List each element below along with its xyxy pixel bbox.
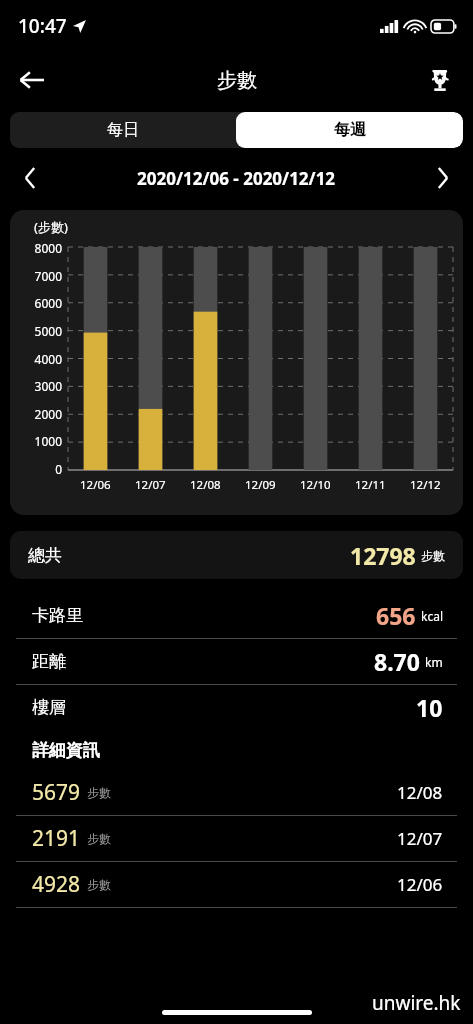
staticText: 5000 [34,323,62,339]
staticText: 8.70 [374,646,420,677]
button[interactable]: 樓層 [0,685,473,730]
button[interactable]: Achievements [417,57,463,103]
staticText: 2020/12/06 - 2020/12/12 [137,167,336,190]
staticText: 步數 [421,548,445,563]
staticText: 12/09 [245,477,276,493]
staticText: unwire.hk [372,990,461,1016]
button[interactable]: 2191 [0,816,473,861]
staticText: 4000 [34,351,62,367]
button[interactable]: 4928 [0,862,473,907]
staticText: 12/06 [80,477,111,493]
button[interactable]: 每日 [10,112,236,148]
staticText: 12/11 [355,477,386,493]
staticText: 10:47 [18,13,67,39]
staticText: (步數) [34,218,68,236]
staticText: 656 [376,600,416,631]
staticText: 步數 [87,877,111,892]
staticText: 2191 [32,824,81,853]
button[interactable]: Previous week [8,158,52,198]
staticText: 5679 [32,778,81,807]
staticText: kcal [421,608,443,624]
button[interactable]: 每週 [236,112,463,148]
staticText: 樓層 [32,697,66,718]
staticText: 2000 [34,406,62,422]
button[interactable]: 距離 [0,639,473,684]
staticText: 8000 [34,240,62,256]
staticText: 3000 [34,378,62,394]
staticText: 12798 [350,540,416,571]
staticText: 步數 [87,831,111,846]
staticText: 12/07 [135,477,166,493]
staticText: 步數 [87,785,111,800]
staticText: 詳細資訊 [32,740,100,761]
staticText: 6000 [34,295,62,311]
button[interactable]: Next week [421,158,465,198]
button[interactable]: Back [8,56,56,104]
button[interactable]: 5679 [0,770,473,815]
staticText: 4928 [32,870,81,899]
staticText: 0 [55,461,62,477]
staticText: 12/06 [397,873,443,896]
button[interactable]: 卡路里 [0,593,473,638]
staticText: 卡路里 [32,605,83,626]
staticText: 總共 [28,545,62,566]
button[interactable]: 總共 [10,531,463,579]
staticText: 10 [416,692,443,723]
staticText: 1000 [34,433,62,449]
staticText: 12/10 [300,477,331,493]
staticText: 步數 [217,68,257,93]
staticText: 7000 [34,268,62,284]
staticText: 12/07 [397,827,443,850]
staticText: 距離 [32,651,66,672]
staticText: km [425,654,443,670]
staticText: 每週 [334,120,366,140]
staticText: 12/12 [410,477,441,493]
staticText: 12/08 [190,477,221,493]
staticText: 12/08 [397,781,443,804]
staticText: 每日 [107,120,139,140]
